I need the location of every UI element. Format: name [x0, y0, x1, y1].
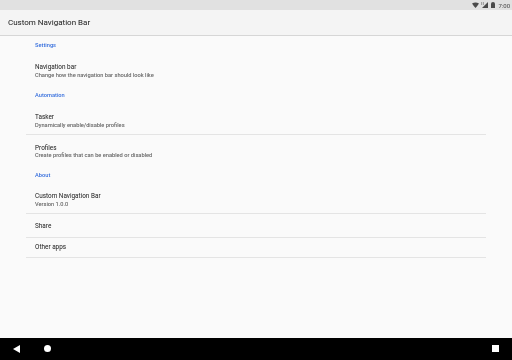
staticText: Navigation bar [35, 63, 77, 71]
staticText: Dynamically enable/disable profiles [35, 122, 125, 129]
staticText: 7:00 [498, 2, 510, 9]
staticText: Share [35, 222, 52, 230]
staticText: Custom Navigation Bar [35, 192, 101, 200]
staticText: Version 1.0.0 [35, 201, 69, 208]
button[interactable] [0, 10, 512, 35]
staticText: Other apps [35, 243, 67, 251]
staticText: Custom Navigation Bar [8, 18, 91, 27]
staticText: Share [35, 222, 52, 230]
staticText: Create profiles that can be enabled or d… [35, 152, 153, 159]
button[interactable]: Profiles [0, 134, 512, 163]
button[interactable]: Back [13, 345, 20, 353]
button[interactable]: Home [44, 345, 51, 352]
staticText: About [35, 172, 51, 179]
staticText: Settings [35, 42, 57, 49]
staticText: 7:00 [498, 2, 510, 9]
staticText: Other apps [35, 243, 67, 251]
button[interactable]: Other apps [0, 237, 512, 257]
button[interactable]: Navigation bar [0, 56, 512, 82]
staticText: Profiles [35, 144, 57, 152]
staticText: Tasker [35, 113, 54, 121]
staticText: Create profiles that can be enabled or d… [35, 152, 153, 159]
staticText: Change how the navigation bar should loo… [35, 72, 154, 79]
staticText: Automation [35, 92, 65, 99]
staticText: Dynamically enable/disable profiles [35, 122, 125, 129]
staticText: Custom Navigation Bar [8, 18, 91, 27]
staticText: Profiles [35, 144, 57, 152]
staticText: Version 1.0.0 [35, 201, 69, 208]
staticText: Change how the navigation bar should loo… [35, 72, 154, 79]
button[interactable]: Tasker [0, 106, 512, 134]
staticText: Navigation bar [35, 63, 77, 71]
button[interactable]: Custom Navigation Bar [0, 186, 512, 213]
staticText: Tasker [35, 113, 54, 121]
button[interactable]: Share [0, 213, 512, 237]
staticText: Custom Navigation Bar [35, 192, 101, 200]
